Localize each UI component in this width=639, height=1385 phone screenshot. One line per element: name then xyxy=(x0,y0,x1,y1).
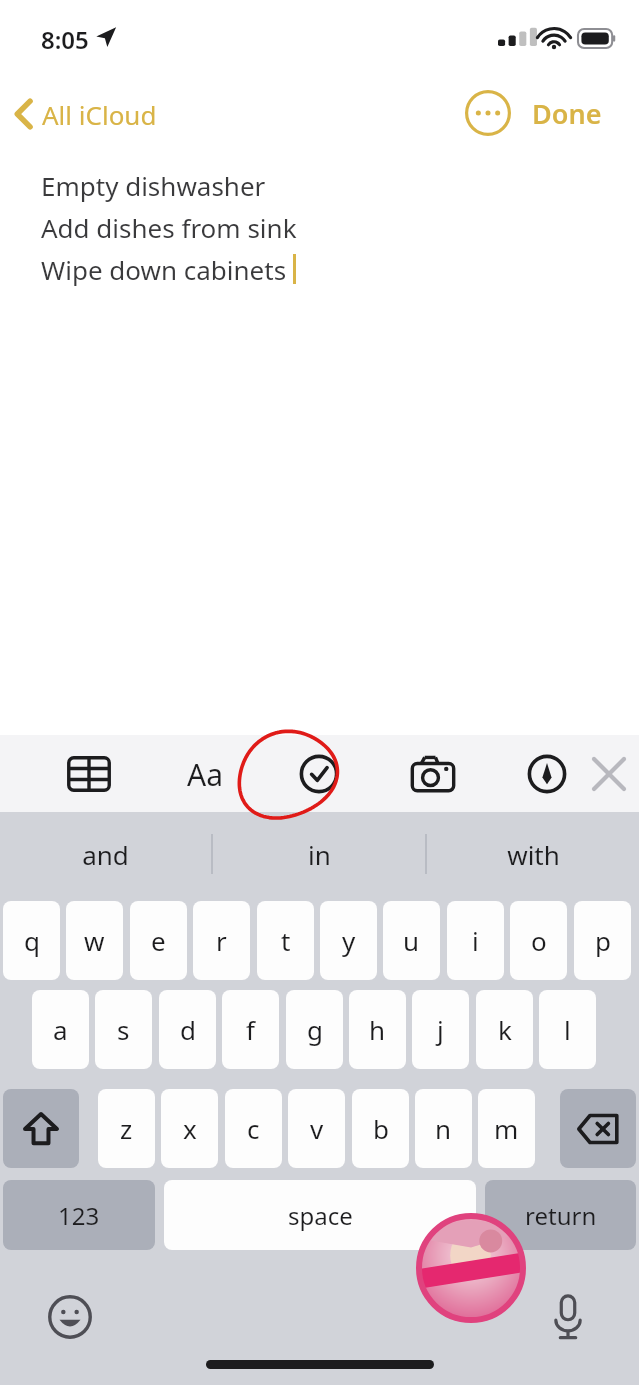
button[interactable]: space xyxy=(164,1180,476,1250)
button[interactable]: u xyxy=(383,901,440,980)
button[interactable]: and xyxy=(0,812,211,896)
button[interactable]: x xyxy=(161,1089,218,1168)
button[interactable]: p xyxy=(574,901,631,980)
button[interactable]: f xyxy=(222,990,279,1069)
staticText: u xyxy=(403,923,420,958)
staticText: w xyxy=(84,923,105,958)
button[interactable]: v xyxy=(288,1089,345,1168)
staticText: j xyxy=(437,1012,444,1047)
button[interactable]: Shift xyxy=(3,1089,79,1168)
staticText: l xyxy=(564,1012,571,1047)
button[interactable]: j xyxy=(412,990,469,1069)
button[interactable]: a xyxy=(32,990,89,1069)
button[interactable]: i xyxy=(447,901,504,980)
button[interactable]: Aa xyxy=(172,741,238,807)
button[interactable]: in xyxy=(213,812,425,896)
button[interactable]: g xyxy=(286,990,343,1069)
button[interactable]: e xyxy=(130,901,187,980)
button[interactable]: d xyxy=(159,990,216,1069)
staticText: r xyxy=(216,923,227,958)
staticText: g xyxy=(307,1012,323,1047)
button[interactable]: o xyxy=(510,901,567,980)
staticText: in xyxy=(308,837,331,872)
staticText: e xyxy=(151,923,166,958)
staticText: All iCloud xyxy=(42,97,157,132)
button[interactable]: h xyxy=(349,990,406,1069)
staticText: Empty dishwasher xyxy=(41,168,266,203)
staticText: f xyxy=(246,1012,255,1047)
staticText: m xyxy=(494,1111,519,1146)
button[interactable]: Camera xyxy=(402,743,464,805)
staticText: Add dishes from sink xyxy=(41,210,297,245)
staticText: Wipe down cabinets xyxy=(41,252,287,287)
button[interactable]: n xyxy=(415,1089,472,1168)
button[interactable]: s xyxy=(95,990,152,1069)
button[interactable]: y xyxy=(320,901,377,980)
button[interactable]: k xyxy=(476,990,533,1069)
staticText: Aa xyxy=(187,754,223,795)
button[interactable]: c xyxy=(225,1089,282,1168)
button[interactable]: b xyxy=(352,1089,409,1168)
button[interactable]: return xyxy=(485,1180,636,1250)
staticText: z xyxy=(120,1111,133,1146)
staticText: p xyxy=(595,923,611,958)
button[interactable]: with xyxy=(427,812,639,896)
staticText: c xyxy=(247,1111,260,1146)
button[interactable]: 123 xyxy=(3,1180,155,1250)
staticText: h xyxy=(369,1012,386,1047)
button[interactable]: All iCloud xyxy=(10,88,163,140)
staticText: o xyxy=(531,923,547,958)
staticText: b xyxy=(373,1111,389,1146)
button[interactable]: Emoji xyxy=(40,1287,100,1347)
button[interactable]: Checklist xyxy=(288,743,350,805)
button[interactable]: r xyxy=(193,901,250,980)
staticText: t xyxy=(281,923,291,958)
button[interactable]: Done xyxy=(532,88,602,138)
button[interactable]: Close keyboard xyxy=(578,742,639,806)
button[interactable]: z xyxy=(98,1089,155,1168)
staticText: k xyxy=(498,1012,512,1047)
staticText: d xyxy=(180,1012,196,1047)
button[interactable]: m xyxy=(478,1089,535,1168)
button[interactable]: Backspace xyxy=(560,1089,636,1168)
button[interactable]: More options xyxy=(463,88,513,138)
staticText: q xyxy=(24,923,40,958)
button[interactable]: Markup xyxy=(516,743,578,805)
staticText: i xyxy=(472,923,479,958)
staticText: space xyxy=(288,1199,353,1232)
staticText: return xyxy=(525,1199,597,1232)
staticText: and xyxy=(82,837,129,872)
staticText: with xyxy=(507,837,560,872)
staticText: 8:05 xyxy=(41,23,89,56)
staticText: s xyxy=(117,1012,130,1047)
staticText: y xyxy=(342,923,356,958)
button[interactable]: Table xyxy=(58,743,120,805)
button[interactable]: q xyxy=(3,901,60,980)
button[interactable]: t xyxy=(257,901,314,980)
button[interactable]: w xyxy=(66,901,123,980)
button[interactable]: Dictation xyxy=(538,1287,598,1347)
staticText: v xyxy=(310,1111,324,1146)
staticText: a xyxy=(53,1012,68,1047)
staticText: 123 xyxy=(58,1199,100,1232)
button[interactable]: l xyxy=(539,990,596,1069)
staticText: Done xyxy=(532,95,602,132)
staticText: n xyxy=(435,1111,452,1146)
staticText: x xyxy=(183,1111,197,1146)
